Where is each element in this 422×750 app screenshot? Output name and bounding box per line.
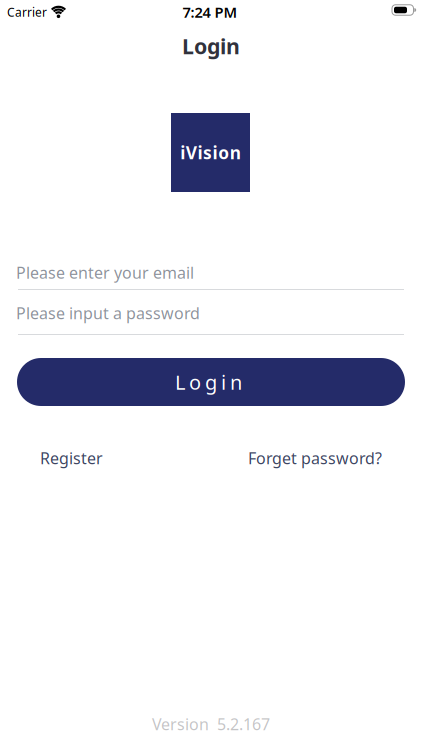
staticText: Version 5.2.167 [152, 713, 270, 735]
staticText: Carrier [7, 4, 47, 20]
staticText: iVision [180, 141, 241, 164]
staticText: Forget password? [248, 447, 382, 469]
staticText: 7:24 PM [182, 2, 237, 22]
staticText: Please input a password [16, 302, 200, 324]
staticText: Please enter your email [16, 262, 194, 283]
staticText: Register [40, 447, 103, 469]
staticText: Login [182, 32, 240, 60]
staticText: Login [175, 369, 242, 395]
